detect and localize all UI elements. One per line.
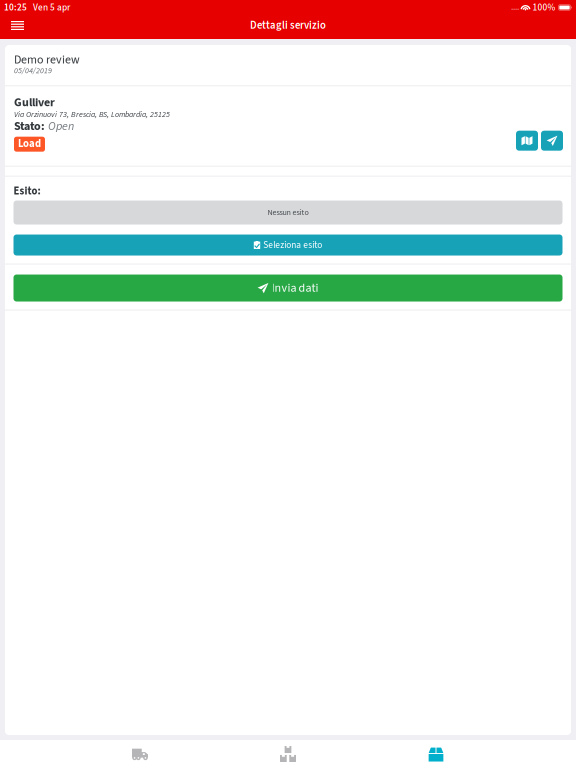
button[interactable]: Menu [0, 14, 35, 37]
staticText: Esito: [13, 184, 40, 198]
button[interactable]: Invia dati [13, 274, 562, 301]
staticText: Open [48, 118, 74, 135]
button[interactable]: Carichi [214, 740, 362, 768]
staticText: 10:25 [4, 1, 27, 14]
staticText: Load [18, 136, 41, 151]
staticText: Ven 5 apr [33, 1, 70, 14]
staticText: Gulliver [14, 94, 55, 111]
button[interactable]: Naviga [541, 131, 563, 151]
button[interactable]: Consegne [66, 740, 214, 768]
staticText: Stato: [14, 118, 45, 135]
staticText: 05/04/2019 [14, 65, 52, 76]
staticText: Seleziona esito [263, 238, 322, 251]
staticText: Nessun esito [267, 207, 308, 218]
button[interactable]: Seleziona esito [13, 234, 562, 255]
button[interactable]: Mappa [516, 131, 538, 151]
button[interactable]: Servizi [362, 740, 510, 768]
staticText: Invia dati [271, 280, 318, 296]
staticText: 100% [532, 1, 555, 14]
staticText: .... [511, 2, 519, 13]
staticText: Via Orzinuovi 73, Brescia, BS, Lombardia… [14, 109, 170, 120]
staticText: Demo review [14, 51, 80, 68]
staticText: Dettagli servizio [250, 18, 326, 33]
